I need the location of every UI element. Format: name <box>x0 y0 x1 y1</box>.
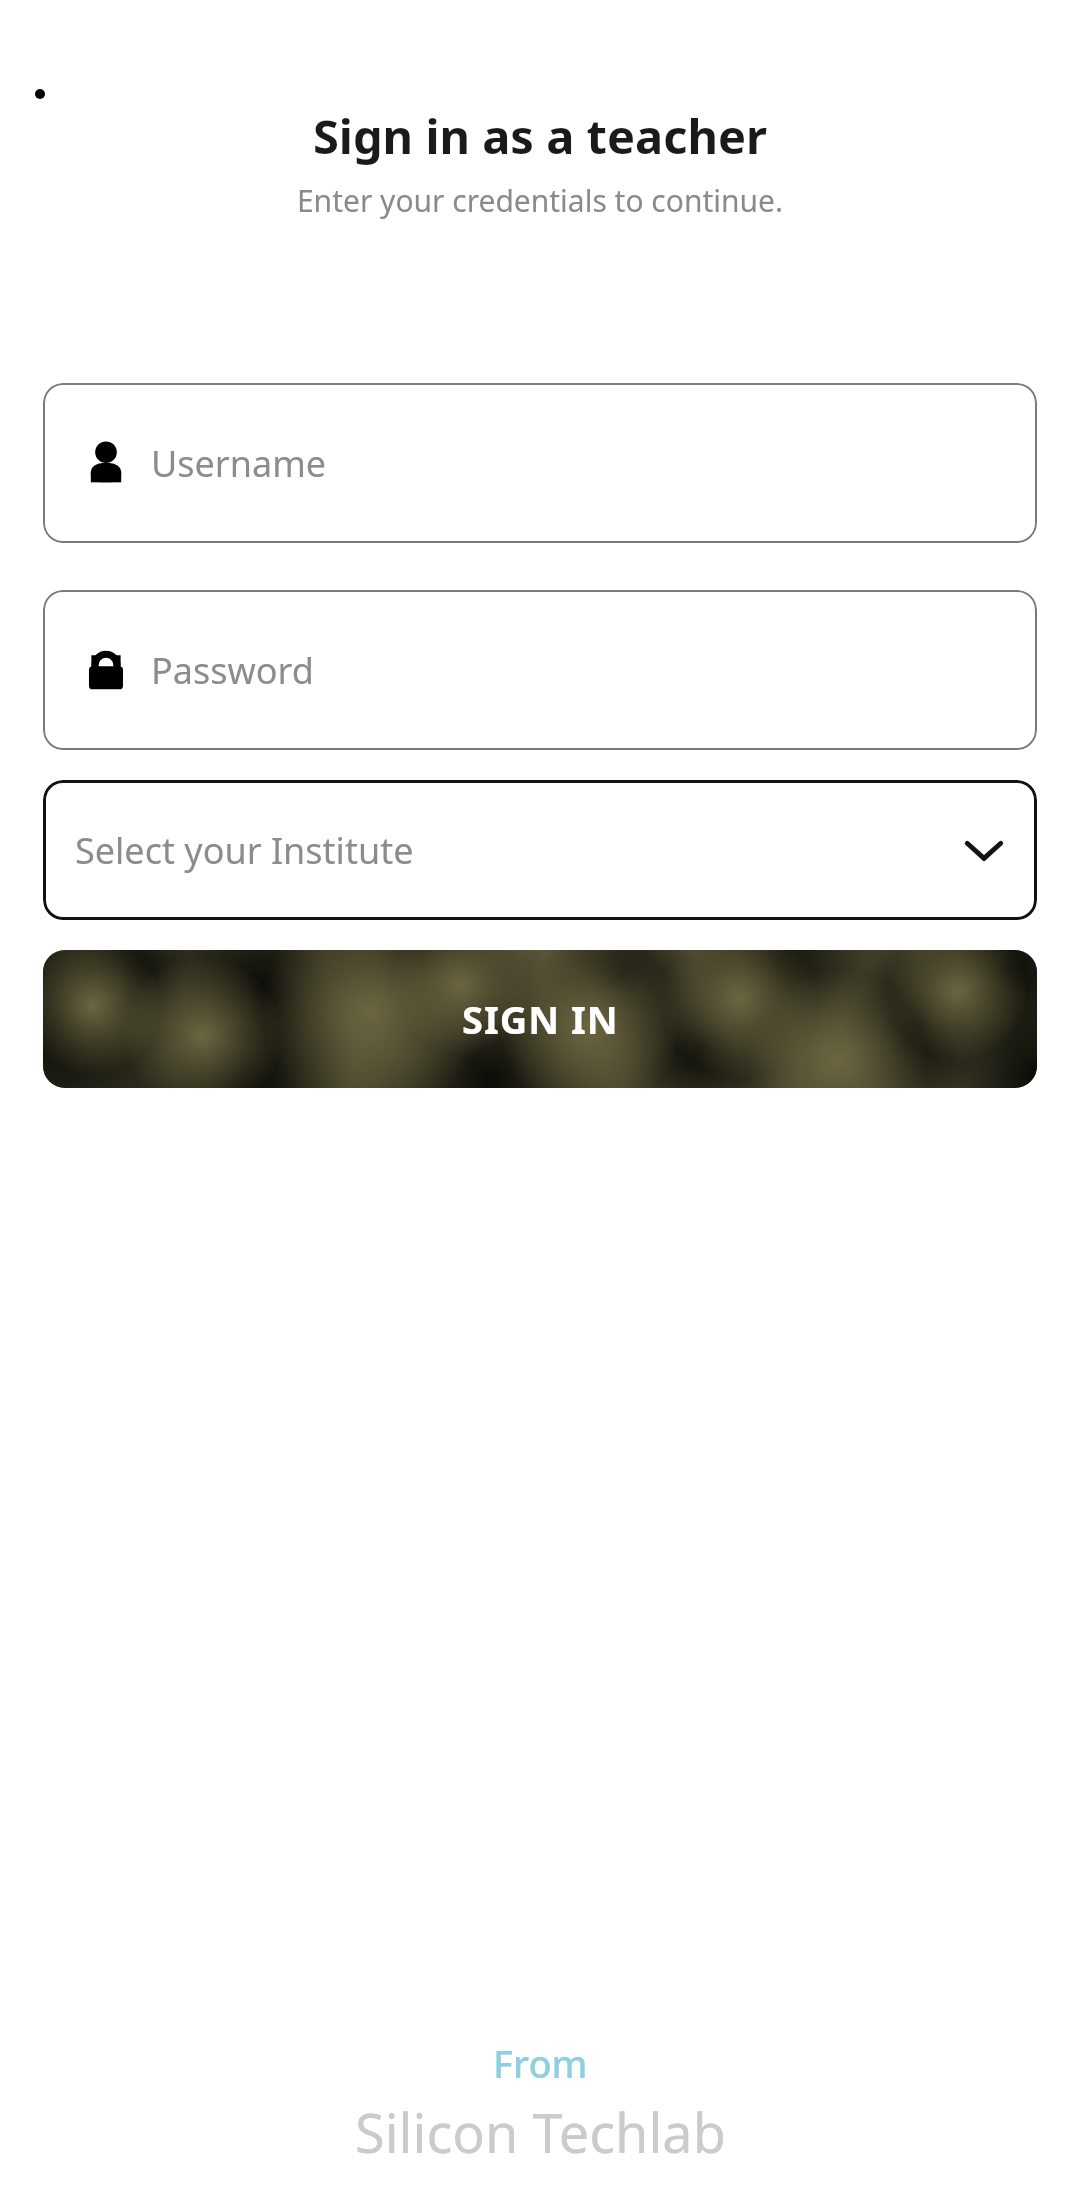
staticText: Select your Institute <box>75 826 963 875</box>
other: Expand institute list <box>963 829 1005 871</box>
staticText: Username <box>151 439 327 488</box>
button[interactable]: SIGN IN <box>43 950 1037 1088</box>
button[interactable]: Username <box>43 383 1037 543</box>
staticText: Sign in as a teacher <box>0 104 1080 168</box>
staticText: Enter your credentials to continue. <box>0 180 1080 221</box>
button[interactable]: Select your Institute <box>43 780 1037 920</box>
staticText: Password <box>151 646 314 695</box>
staticText: Silicon Techlab <box>355 2095 726 2169</box>
staticText: From <box>493 2037 588 2089</box>
staticText: SIGN IN <box>462 993 619 1045</box>
button[interactable]: Password <box>43 590 1037 750</box>
